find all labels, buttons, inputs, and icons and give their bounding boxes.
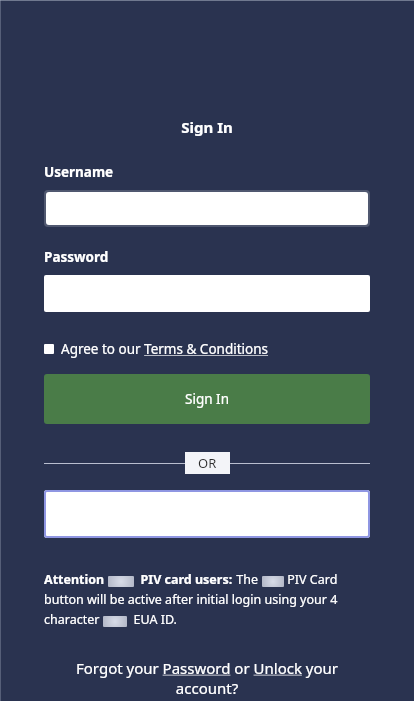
staticText: character — [44, 611, 103, 628]
staticText: Agree to our Terms & Conditions — [61, 340, 269, 358]
staticText: Username — [44, 163, 114, 181]
staticText: Sign In — [44, 117, 370, 137]
staticText: PIV Card — [284, 571, 338, 588]
staticText: button will be active after initial logi… — [44, 591, 338, 608]
button[interactable] — [46, 192, 368, 225]
staticText: The — [233, 571, 262, 588]
button[interactable]: PIV Card sign in — [44, 490, 370, 538]
staticText: Attention — [44, 571, 108, 588]
staticText: EUA ID. — [127, 611, 177, 628]
staticText: Password — [44, 248, 109, 266]
staticText: Forgot your Password or Unlock your acco… — [44, 658, 370, 698]
staticText: PIV card users: — [134, 571, 233, 588]
button[interactable]: Agree to our Terms & Conditions — [44, 340, 269, 358]
staticText: OR — [198, 454, 217, 472]
staticText: Sign In — [185, 390, 229, 408]
button[interactable]: Sign In — [44, 374, 370, 424]
button[interactable]: Forgot your Password or Unlock your acco… — [44, 658, 370, 698]
